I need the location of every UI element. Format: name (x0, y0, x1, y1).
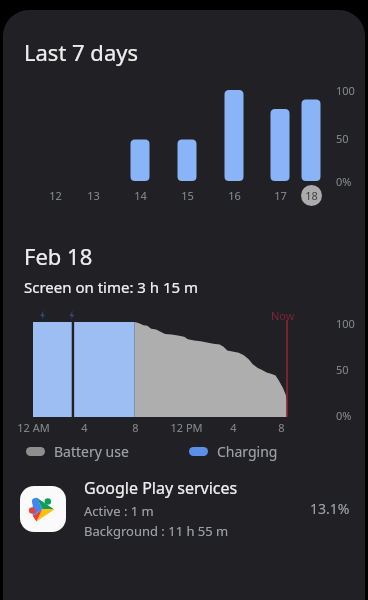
staticText: 8 (278, 420, 285, 435)
button[interactable]: 14 (127, 184, 153, 206)
staticText: 0% (336, 174, 352, 189)
button[interactable]: Google Play services icon (3, 471, 365, 546)
staticText: Background : 11 h 55 m (84, 522, 229, 540)
button[interactable]: 15 (174, 184, 200, 206)
button[interactable]: 18 (298, 184, 324, 206)
staticText: Battery use (54, 442, 129, 461)
button[interactable]: 13 (80, 184, 106, 206)
staticText: 12 PM (170, 420, 203, 435)
staticText: 12 AM (17, 420, 50, 435)
staticText: Charging (217, 442, 278, 461)
staticText: 100 (336, 316, 355, 331)
staticText: Now (271, 308, 295, 323)
staticText: 50 (336, 362, 349, 377)
staticText: 13 (87, 188, 100, 203)
staticText: 12 (49, 188, 62, 203)
staticText: 13.1% (310, 499, 350, 518)
staticText: 8 (132, 420, 139, 435)
button[interactable]: 12 (42, 184, 68, 206)
staticText: Feb 18 (24, 241, 93, 271)
other: Google Play services icon (20, 486, 66, 532)
button[interactable]: Charging (189, 442, 278, 461)
button[interactable]: 16 (221, 184, 247, 206)
staticText: 0% (336, 408, 352, 423)
staticText: Screen on time: 3 h 15 m (24, 277, 199, 297)
staticText: 15 (181, 188, 194, 203)
button[interactable]: 17 (267, 184, 293, 206)
staticText: 4 (81, 420, 88, 435)
staticText: Google Play services (84, 477, 238, 499)
staticText: 18 (305, 188, 318, 203)
staticText: 16 (228, 188, 241, 203)
staticText: 17 (274, 188, 287, 203)
staticText: 4 (230, 420, 237, 435)
staticText: 50 (336, 131, 349, 146)
staticText: 100 (336, 83, 355, 98)
staticText: 14 (134, 188, 147, 203)
staticText: Active : 1 m (84, 502, 154, 520)
button[interactable]: Battery use (26, 442, 129, 461)
staticText: Last 7 days (24, 37, 139, 67)
